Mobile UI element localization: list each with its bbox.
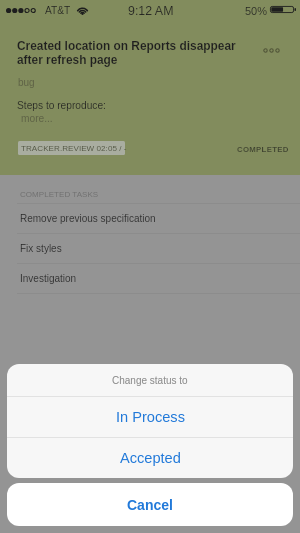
button[interactable]: Investigation [0,263,300,293]
button[interactable]: Cancel [7,483,293,526]
staticText: Accepted [120,450,181,466]
staticText: Change status to [112,375,188,386]
button[interactable]: Remove previous specification [0,203,300,233]
button[interactable]: In Process [7,397,293,437]
staticText: 9:12 AM [128,4,174,18]
staticText: bug [18,77,35,88]
staticText: COMPLETED [237,145,289,154]
staticText: TRACKER.REVIEW 02:05 / - [21,144,127,153]
button[interactable]: Fix styles [0,233,300,263]
button[interactable]: Accepted [7,438,293,478]
staticText: AT&T [45,5,71,16]
staticText: Remove previous specification [20,213,156,224]
staticText: Investigation [20,273,77,284]
staticText: after refresh page [17,53,118,66]
button[interactable] [18,141,125,155]
staticText: Steps to reproduce: [17,100,106,111]
staticText: Cancel [127,497,173,513]
button[interactable]: More options [263,45,280,55]
staticText: Fix styles [20,243,62,254]
staticText: COMPLETED TASKS [20,190,99,199]
staticText: more... [21,113,53,124]
staticText: 50% [245,5,268,17]
staticText: Created location on Reports disappear [17,39,236,52]
staticText: In Process [116,409,185,425]
